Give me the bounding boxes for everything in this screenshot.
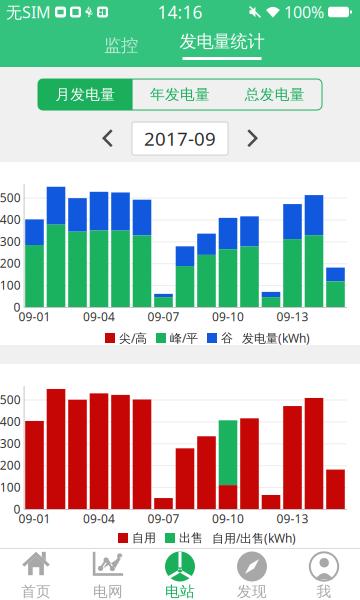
staticText: 年发电量 bbox=[150, 85, 210, 103]
staticText: 400 bbox=[0, 413, 21, 429]
staticText: 500 bbox=[0, 391, 21, 407]
button[interactable]: 发电量统计 bbox=[170, 24, 274, 67]
staticText: 100% bbox=[284, 1, 324, 23]
staticText: 谷 bbox=[221, 331, 233, 345]
staticText: 自用 bbox=[132, 531, 156, 545]
staticText: 发现 bbox=[237, 582, 267, 600]
button[interactable]: 总发电量 bbox=[227, 79, 322, 110]
staticText: 首页 bbox=[21, 582, 51, 600]
staticText: 09-07 bbox=[147, 510, 179, 526]
staticText: 0 bbox=[13, 501, 20, 517]
staticText: 发电量(kWh) bbox=[242, 330, 310, 346]
staticText: 400 bbox=[0, 211, 21, 227]
staticText: 尖/高 bbox=[119, 330, 147, 346]
staticText: 峰/平 bbox=[170, 330, 198, 346]
staticText: 2017-09 bbox=[144, 126, 216, 151]
staticText: 09-04 bbox=[83, 308, 115, 324]
staticText: 09-10 bbox=[212, 510, 244, 526]
button[interactable]: Next month bbox=[228, 121, 278, 155]
button[interactable]: 年发电量 bbox=[133, 79, 227, 110]
staticText: 200 bbox=[0, 457, 21, 473]
staticText: 月发电量 bbox=[55, 85, 115, 103]
button[interactable]: 监控 bbox=[81, 24, 161, 67]
staticText: 出售 bbox=[179, 531, 203, 545]
button[interactable]: 我 bbox=[288, 549, 360, 600]
staticText: 电网 bbox=[93, 582, 123, 600]
button[interactable]: 电网 bbox=[72, 549, 144, 600]
staticText: 09-01 bbox=[18, 308, 50, 324]
button[interactable]: 发现 bbox=[216, 549, 288, 600]
button[interactable]: Previous month bbox=[82, 121, 132, 155]
staticText: 300 bbox=[0, 233, 21, 249]
staticText: 09-01 bbox=[18, 510, 50, 526]
staticText: 09-13 bbox=[276, 510, 308, 526]
staticText: 09-10 bbox=[212, 308, 244, 324]
staticText: 电站 bbox=[165, 582, 195, 600]
staticText: 发电量统计 bbox=[179, 31, 264, 52]
staticText: 09-07 bbox=[147, 308, 179, 324]
staticText: 100 bbox=[0, 277, 21, 293]
staticText: 我 bbox=[316, 582, 331, 600]
button[interactable]: 月发电量 bbox=[38, 79, 133, 110]
button[interactable]: 首页 bbox=[0, 549, 72, 600]
staticText: 总发电量 bbox=[245, 85, 305, 103]
staticText: 自用/出售(kWh) bbox=[212, 530, 296, 546]
staticText: 09-04 bbox=[83, 510, 115, 526]
staticText: 09-13 bbox=[276, 308, 308, 324]
staticText: 14:16 bbox=[157, 0, 202, 23]
staticText: 200 bbox=[0, 255, 21, 271]
staticText: 100 bbox=[0, 479, 21, 495]
staticText: 300 bbox=[0, 435, 21, 451]
staticText: 无SIM bbox=[6, 1, 51, 23]
staticText: 监控 bbox=[104, 35, 138, 56]
staticText: 500 bbox=[0, 189, 21, 205]
staticText: 0 bbox=[13, 299, 20, 315]
button[interactable]: 电站 bbox=[144, 549, 216, 600]
